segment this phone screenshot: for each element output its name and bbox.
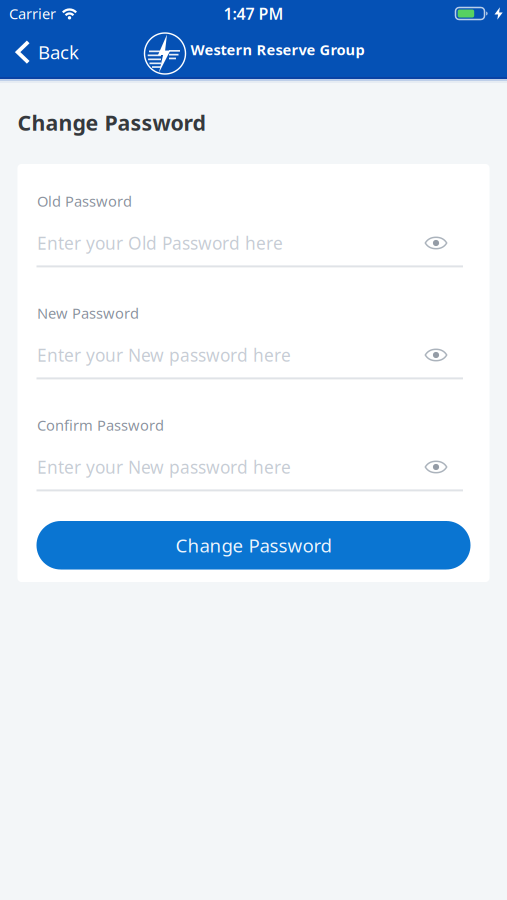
staticText: Enter your New password here [37,455,291,478]
staticText: Western Reserve Group [190,40,364,59]
staticText: Enter your New password here [37,343,291,366]
button[interactable]: Change Password [36,521,470,569]
button[interactable]: Back [0,27,89,77]
staticText: Change Password [17,108,205,137]
staticText: Enter your Old Password here [37,231,283,254]
staticText: New Password [37,303,139,323]
button[interactable]: Show password [424,236,447,249]
staticText: Back [38,40,79,64]
staticText: Old Password [37,191,132,211]
staticText: Carrier [9,4,56,23]
staticText: 1:47 PM [223,3,283,24]
button[interactable]: Show password [424,348,447,361]
staticText: Change Password [175,533,331,558]
staticText: Confirm Password [37,415,164,435]
button[interactable]: Show password [424,460,447,473]
